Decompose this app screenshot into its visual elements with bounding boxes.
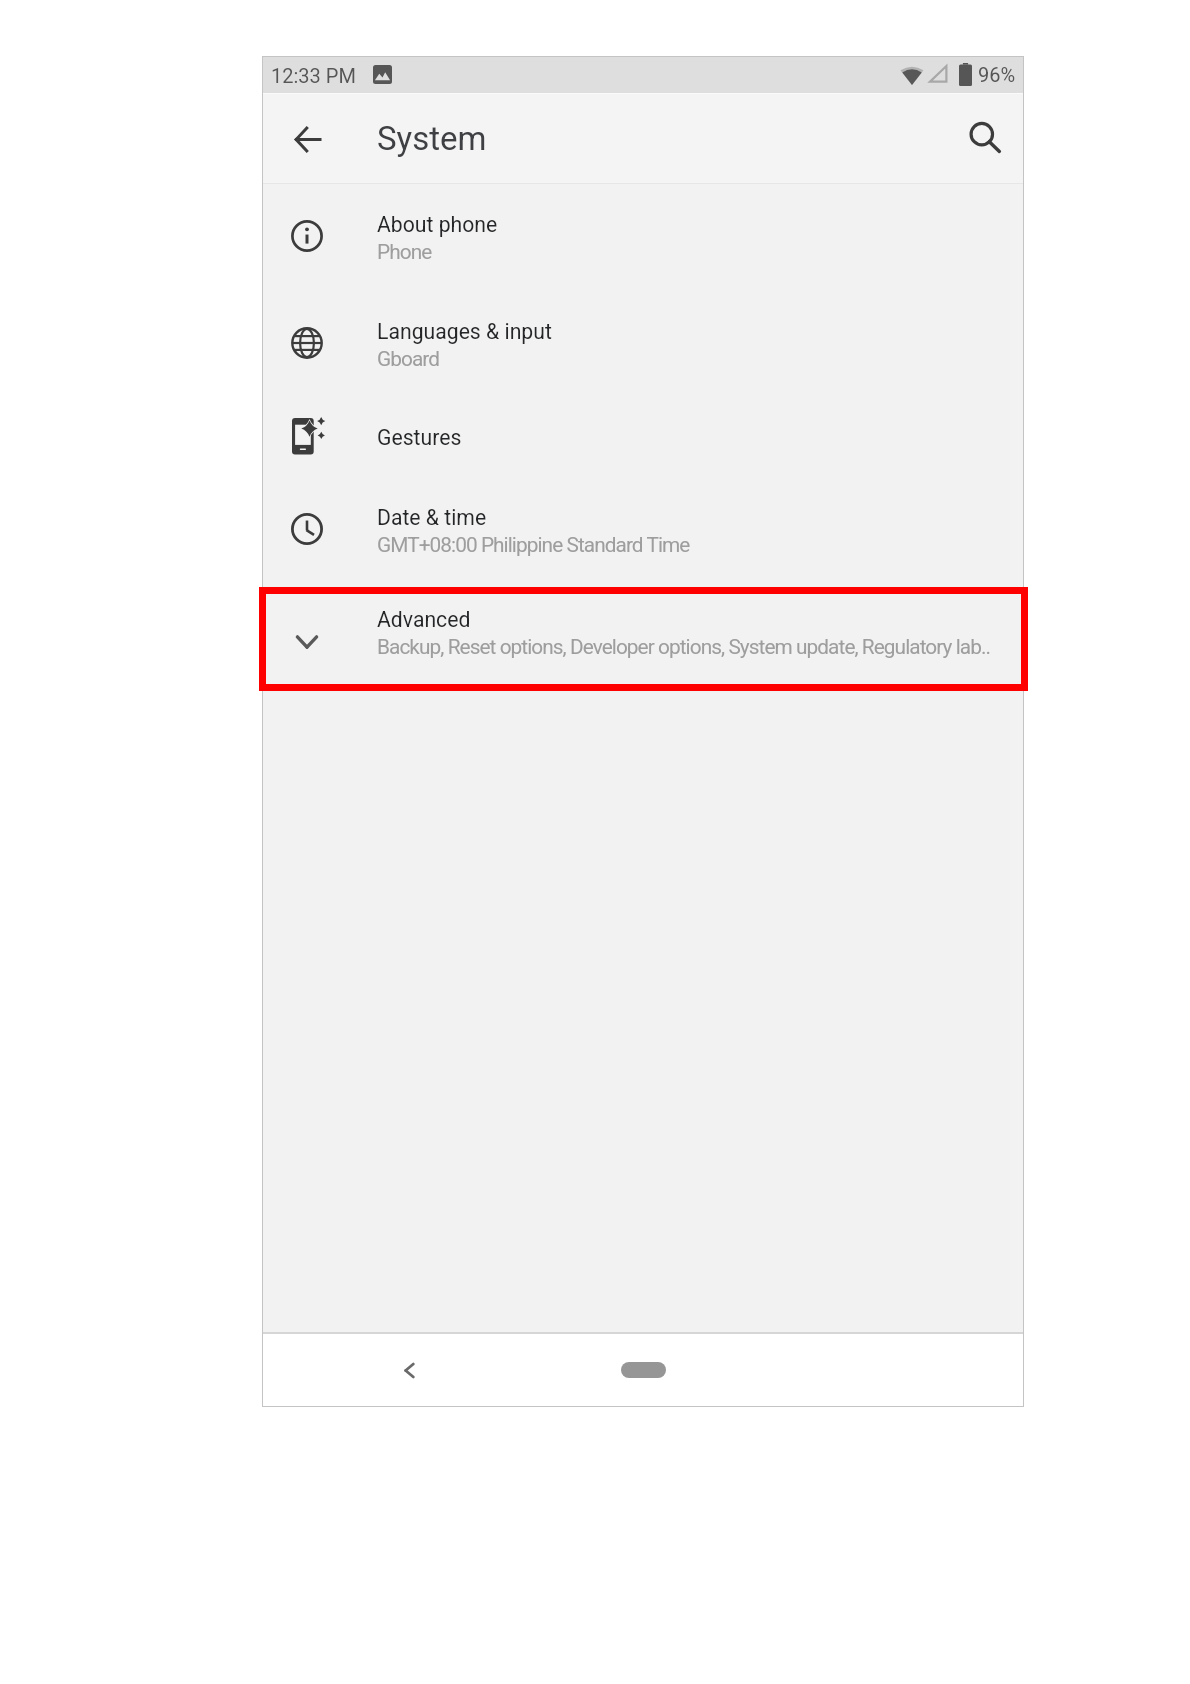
- staticText: Gestures: [377, 425, 462, 450]
- staticText: Gboard: [377, 347, 1012, 371]
- button[interactable]: Home: [621, 1362, 666, 1378]
- staticText: 96%: [978, 63, 1016, 86]
- button[interactable]: Navigate up: [277, 108, 339, 170]
- staticText: GMT+08:00 Philippine Standard Time: [377, 533, 1012, 557]
- button[interactable]: Date & time: [262, 477, 1024, 584]
- staticText: Phone: [377, 240, 1012, 264]
- button[interactable]: About phone: [262, 184, 1024, 291]
- staticText: System: [377, 119, 487, 158]
- button[interactable]: Search: [954, 107, 1016, 169]
- button[interactable]: Back: [379, 1340, 439, 1400]
- button[interactable]: Gestures: [262, 397, 1024, 477]
- staticText: Backup, Reset options, Developer options…: [377, 635, 1012, 659]
- button[interactable]: Languages & input: [262, 291, 1024, 398]
- staticText: Languages & input: [377, 319, 552, 344]
- staticText: About phone: [377, 212, 498, 237]
- staticText: Advanced: [377, 607, 471, 632]
- button[interactable]: Advanced: [262, 585, 1024, 681]
- staticText: 12:33 PM: [271, 64, 356, 87]
- staticText: Date & time: [377, 505, 487, 530]
